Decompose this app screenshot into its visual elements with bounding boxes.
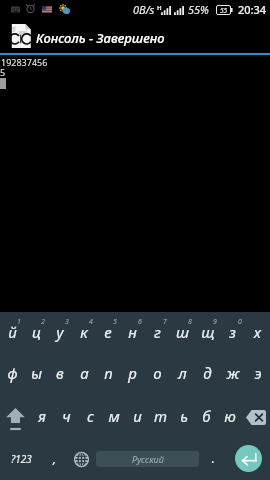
button[interactable]: щ xyxy=(195,312,220,354)
staticText: 5 xyxy=(0,66,6,78)
staticText: щ xyxy=(201,322,215,342)
staticText: й xyxy=(8,322,17,342)
staticText: 6 xyxy=(138,317,142,327)
staticText: о xyxy=(153,363,162,383)
button[interactable]: з xyxy=(220,312,245,354)
staticText: 192837456 xyxy=(1,56,48,68)
staticText: 2 xyxy=(41,317,45,327)
button[interactable]: Backspace xyxy=(241,396,270,438)
staticText: Русский xyxy=(132,453,164,465)
staticText: ф xyxy=(7,363,18,383)
button[interactable]: х xyxy=(245,312,270,354)
staticText: 9 xyxy=(213,317,217,327)
staticText: 8 xyxy=(188,317,192,327)
staticText: д xyxy=(203,363,212,383)
button[interactable]: в xyxy=(48,354,72,396)
button[interactable]: . xyxy=(199,438,227,480)
staticText: 55% xyxy=(188,2,209,17)
button[interactable]: н xyxy=(120,312,145,354)
staticText: ц xyxy=(32,322,41,342)
staticText: 20:34 xyxy=(238,2,267,17)
button[interactable]: л xyxy=(170,354,195,396)
staticText: ж xyxy=(226,363,240,383)
button[interactable]: ц xyxy=(24,312,48,354)
button[interactable]: о xyxy=(145,354,170,396)
staticText: 7 xyxy=(163,317,167,327)
staticText: 55 xyxy=(220,6,228,15)
button[interactable]: р xyxy=(120,354,145,396)
staticText: з xyxy=(229,322,236,342)
staticText: ю xyxy=(224,406,236,426)
staticText: 0B/s xyxy=(133,2,155,17)
staticText: ь xyxy=(180,406,188,426)
button[interactable]: д xyxy=(195,354,220,396)
button[interactable]: ч xyxy=(54,396,78,438)
staticText: м xyxy=(108,406,120,426)
staticText: н xyxy=(128,322,137,342)
button[interactable]: ж xyxy=(220,354,245,396)
staticText: 5 xyxy=(113,317,117,327)
button[interactable]: ю xyxy=(218,396,241,438)
staticText: ?123 xyxy=(11,452,32,466)
button[interactable]: у xyxy=(48,312,72,354)
button[interactable]: ш xyxy=(170,312,195,354)
staticText: х xyxy=(254,322,261,342)
button[interactable]: т xyxy=(149,396,172,438)
staticText: г xyxy=(154,322,161,342)
staticText: ы xyxy=(31,363,42,383)
staticText: с xyxy=(87,406,94,426)
button[interactable]: к xyxy=(72,312,96,354)
button[interactable]: м xyxy=(102,396,126,438)
staticText: 0 xyxy=(238,317,242,327)
staticText: 4 xyxy=(89,317,93,327)
staticText: ч xyxy=(62,406,71,426)
button[interactable]: с xyxy=(78,396,102,438)
button[interactable]: ф xyxy=(0,354,24,396)
button[interactable]: э xyxy=(245,354,270,396)
staticText: е xyxy=(104,322,112,342)
staticText: т xyxy=(154,406,167,426)
button[interactable]: я xyxy=(30,396,54,438)
button[interactable]: Русский xyxy=(96,451,199,467)
staticText: ш xyxy=(176,322,189,342)
button[interactable]: ы xyxy=(24,354,48,396)
staticText: я xyxy=(38,406,46,426)
button[interactable]: а xyxy=(72,354,96,396)
button[interactable]: ?123 xyxy=(0,438,42,480)
button[interactable]: б xyxy=(195,396,218,438)
staticText: H xyxy=(157,4,162,12)
staticText: 1 xyxy=(17,317,21,327)
staticText: у xyxy=(56,322,64,342)
staticText: . xyxy=(211,449,215,467)
button[interactable]: е xyxy=(96,312,120,354)
button[interactable]: Change keyboard language xyxy=(67,438,96,480)
staticText: б xyxy=(202,406,211,426)
button[interactable]: г xyxy=(145,312,170,354)
button[interactable]: ь xyxy=(172,396,195,438)
staticText: л xyxy=(178,363,187,383)
button[interactable]: п xyxy=(96,354,120,396)
staticText: , xyxy=(53,449,57,467)
staticText: р xyxy=(128,363,137,383)
button[interactable]: й xyxy=(0,312,24,354)
staticText: Консоль - Завершено xyxy=(36,29,165,47)
button[interactable]: Enter xyxy=(227,438,270,480)
staticText: к xyxy=(80,322,88,342)
staticText: э xyxy=(254,363,262,383)
staticText: 3 xyxy=(65,317,69,327)
button[interactable]: Shift xyxy=(0,396,30,438)
staticText: и xyxy=(133,406,142,426)
staticText: п xyxy=(104,363,113,383)
button[interactable]: и xyxy=(126,396,149,438)
button[interactable]: , xyxy=(42,438,67,480)
staticText: а xyxy=(80,363,89,383)
staticText: в xyxy=(56,363,64,383)
